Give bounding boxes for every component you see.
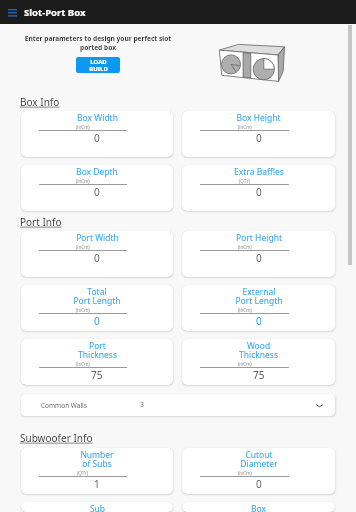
staticText: Number of Subs bbox=[80, 449, 114, 470]
staticText: Port Width bbox=[76, 232, 119, 244]
staticText: Port Height bbox=[236, 232, 282, 244]
staticText: (inCm) bbox=[238, 244, 252, 250]
staticText: (inCm) bbox=[76, 361, 90, 367]
staticText: 0 bbox=[94, 185, 100, 199]
staticText: Common Walls bbox=[41, 401, 87, 410]
button[interactable]: Total Port Length bbox=[21, 285, 173, 331]
staticText: Cutout Diameter bbox=[240, 449, 278, 470]
button[interactable]: Number of Subs bbox=[21, 448, 173, 494]
staticText: (inCm) bbox=[238, 307, 252, 313]
button[interactable]: LOAD BUILD bbox=[76, 57, 120, 73]
staticText: (inCm) bbox=[238, 470, 252, 476]
staticText: 0 bbox=[94, 131, 100, 145]
staticText: Box Height bbox=[236, 112, 281, 124]
staticText: 3 bbox=[140, 400, 145, 410]
button[interactable]: Port Width bbox=[21, 231, 173, 277]
button[interactable]: Menu bbox=[8, 8, 17, 17]
staticText: 1 bbox=[94, 477, 100, 491]
staticText: (inCm) bbox=[238, 124, 252, 130]
staticText: 0 bbox=[256, 131, 262, 145]
staticText: Extra Baffles bbox=[234, 166, 284, 178]
button[interactable]: Extra Baffles bbox=[182, 165, 335, 211]
staticText: Box Width bbox=[77, 112, 118, 124]
staticText: (inCm) bbox=[76, 124, 90, 130]
button[interactable]: Box Height bbox=[182, 111, 335, 157]
staticText: (QTY) bbox=[239, 178, 251, 184]
button[interactable]: Cutout Diameter bbox=[182, 448, 335, 494]
staticText: (inCm) bbox=[76, 307, 90, 313]
staticText: Sub Displacement bbox=[70, 503, 125, 512]
staticText: (inCm) bbox=[238, 361, 252, 367]
staticText: (QTY) bbox=[77, 470, 89, 476]
staticText: Enter parameters to design your perfect … bbox=[23, 34, 173, 52]
staticText: (inCm) bbox=[76, 178, 90, 184]
staticText: Box Volume bbox=[243, 503, 274, 512]
staticText: (inCm) bbox=[76, 244, 90, 250]
staticText: Port Info bbox=[20, 215, 62, 229]
button[interactable]: External Port Length bbox=[182, 285, 335, 331]
staticText: 0 bbox=[256, 314, 262, 328]
staticText: Total Port Length bbox=[73, 286, 121, 307]
button[interactable]: Port Thickness bbox=[21, 339, 173, 385]
button[interactable]: Box Volume bbox=[182, 502, 335, 512]
button[interactable]: Box Depth bbox=[21, 165, 173, 211]
staticText: 0 bbox=[94, 251, 100, 265]
staticText: Box Info bbox=[20, 95, 60, 109]
staticText: Slot-Port Box bbox=[24, 6, 86, 19]
staticText: 0 bbox=[256, 185, 262, 199]
staticText: Box Depth bbox=[76, 166, 118, 178]
button[interactable]: Wood Thickness bbox=[182, 339, 335, 385]
staticText: 0 bbox=[256, 477, 262, 491]
button[interactable]: Port Height bbox=[182, 231, 335, 277]
staticText: External Port Length bbox=[235, 286, 283, 307]
staticText: Subwoofer Info bbox=[20, 431, 93, 445]
staticText: Port Thickness bbox=[78, 340, 117, 361]
button[interactable]: Common Walls bbox=[21, 394, 335, 416]
staticText: LOAD BUILD bbox=[89, 58, 108, 73]
button[interactable]: Sub Displacement bbox=[21, 502, 173, 512]
staticText: 0 bbox=[256, 251, 262, 265]
button[interactable]: Box Width bbox=[21, 111, 173, 157]
staticText: 0 bbox=[94, 314, 100, 328]
staticText: 75 bbox=[91, 368, 103, 382]
staticText: Wood Thickness bbox=[239, 340, 278, 361]
staticText: 75 bbox=[253, 368, 265, 382]
